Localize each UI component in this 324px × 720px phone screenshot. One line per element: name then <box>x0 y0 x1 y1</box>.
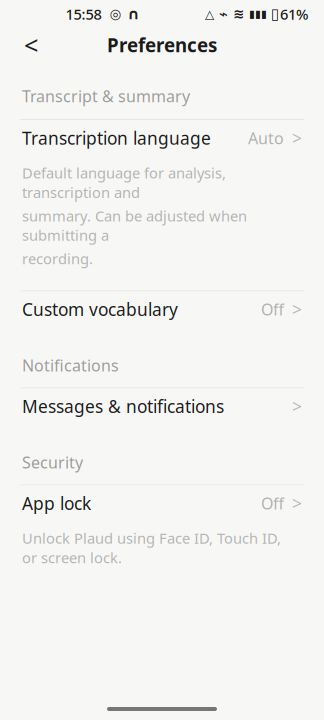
staticText: 15:58 <box>65 4 101 24</box>
staticText: Preferences <box>107 33 217 57</box>
button[interactable]: Back <box>14 28 48 62</box>
staticText: ⌁ <box>219 6 228 22</box>
staticText: ◎ <box>109 6 121 21</box>
staticText: Unlock Plaud using Face ID, Touch ID, or… <box>22 528 281 567</box>
staticText: Default language for analysis, transcrip… <box>22 163 226 202</box>
staticText: ▯ <box>271 6 279 22</box>
staticText: > <box>292 395 302 418</box>
staticText: Transcript & summary <box>22 85 190 107</box>
staticText: Notifications <box>22 355 119 376</box>
button[interactable]: App lock <box>0 485 324 521</box>
staticText: > <box>292 298 302 321</box>
staticText: App lock <box>22 492 91 515</box>
staticText: △ <box>205 7 214 21</box>
staticText: Auto <box>248 127 284 149</box>
staticText: ▮▮▮ <box>249 8 267 20</box>
staticText: Custom vocabulary <box>22 298 178 321</box>
staticText: Messages & notifications <box>22 395 224 418</box>
button[interactable]: Custom vocabulary <box>0 291 324 327</box>
staticText: Off <box>261 299 284 320</box>
staticText: Security <box>22 452 83 473</box>
staticText: recording. <box>22 249 93 268</box>
staticText: < <box>24 28 38 62</box>
staticText: ≋ <box>233 6 244 21</box>
button[interactable]: Messages & notifications <box>0 388 324 424</box>
staticText: > <box>292 126 302 149</box>
staticText: Transcription language <box>22 126 211 149</box>
staticText: ∩ <box>127 6 139 22</box>
staticText: > <box>292 492 302 515</box>
button[interactable]: Transcription language <box>0 120 324 156</box>
staticText: summary. Can be adjusted when submitting… <box>22 206 247 245</box>
staticText: 61% <box>280 4 308 24</box>
staticText: Off <box>261 493 284 514</box>
